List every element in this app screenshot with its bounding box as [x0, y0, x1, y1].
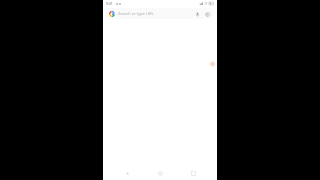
button[interactable]: Recent apps	[184, 167, 202, 179]
staticText: Search or type URL	[118, 11, 154, 16]
button[interactable]: Voice search	[193, 10, 201, 18]
staticText: 9:41	[106, 1, 113, 6]
button[interactable]: Home	[151, 167, 169, 179]
button[interactable]: Back	[118, 167, 136, 179]
button[interactable]: Google Lens	[203, 10, 211, 18]
button[interactable]: Search or type URL	[106, 8, 214, 19]
